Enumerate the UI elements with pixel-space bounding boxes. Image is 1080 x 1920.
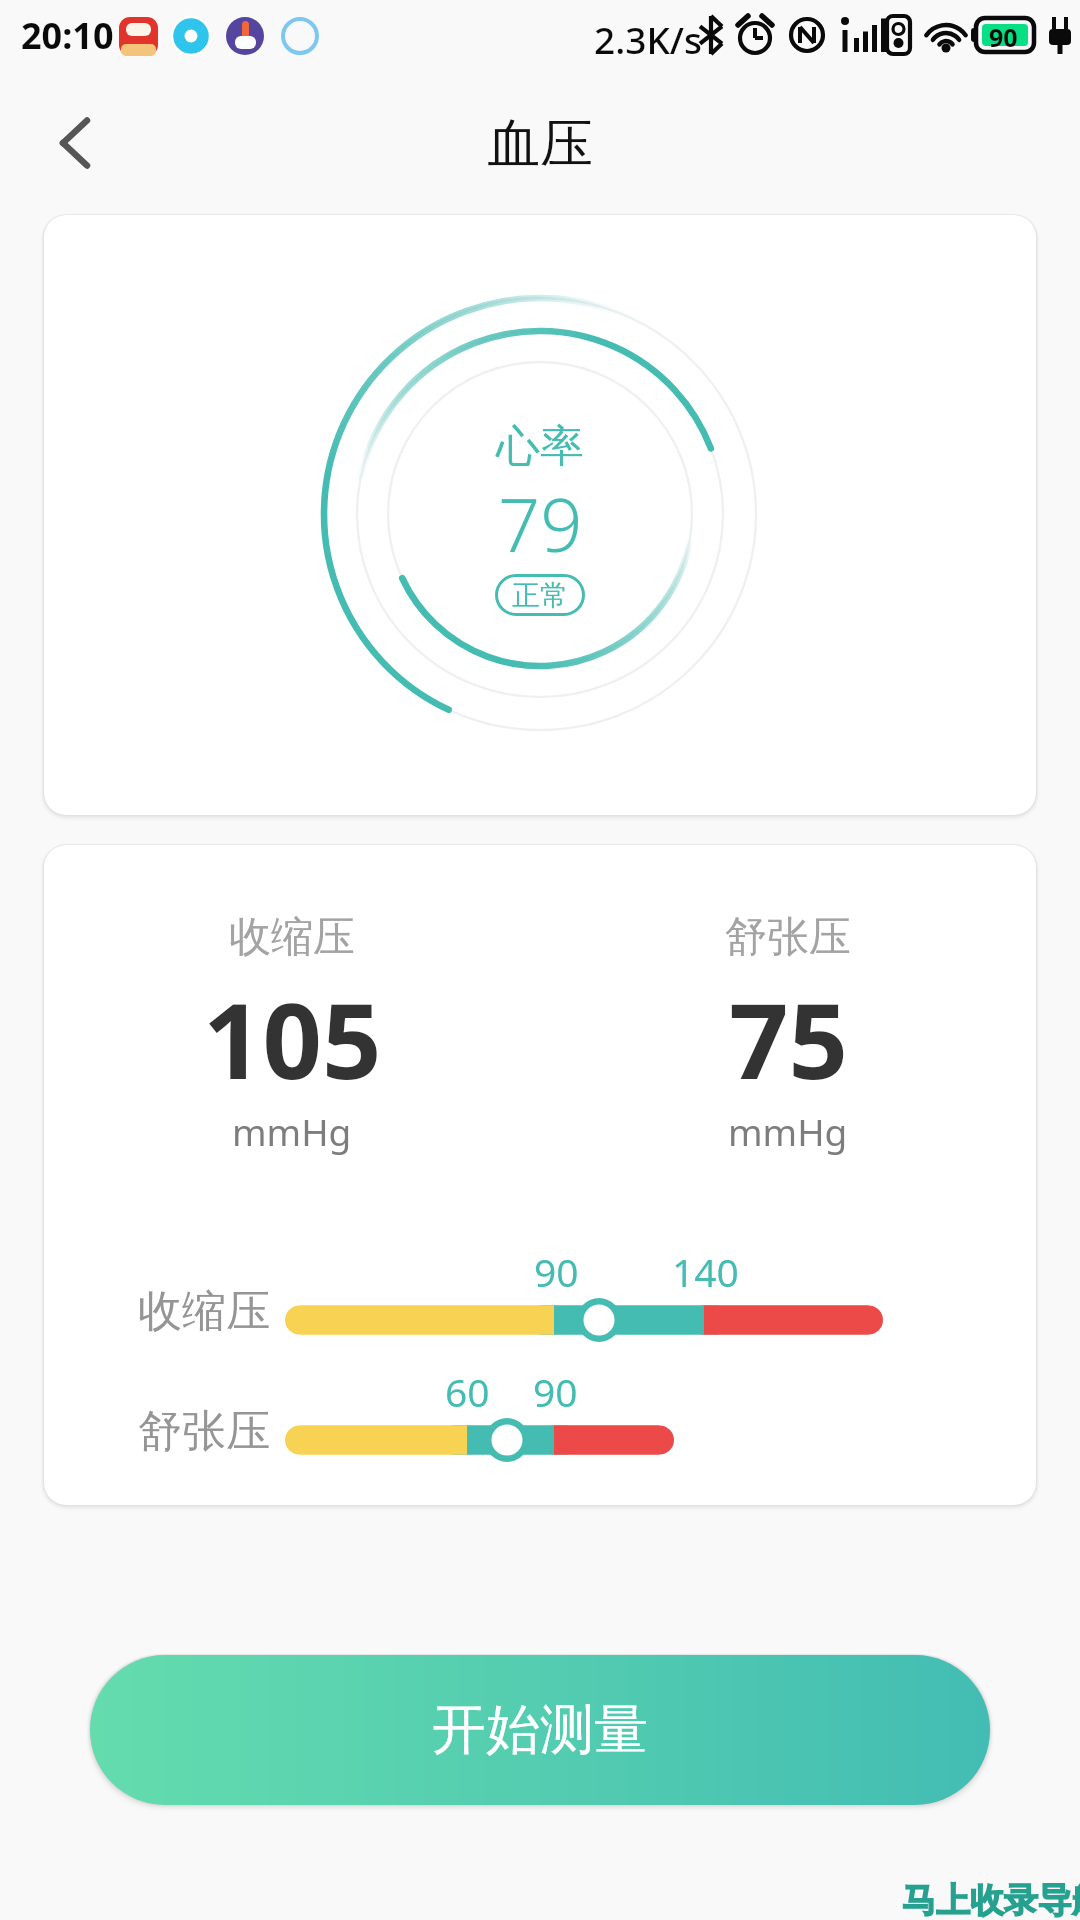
staticText: 2.3K/s <box>594 14 703 64</box>
staticText: 正常 <box>512 578 568 613</box>
staticText: mmHg <box>232 1106 352 1156</box>
staticText: 开始测量 <box>432 1696 648 1764</box>
button[interactable]: 收缩压 <box>134 1280 897 1360</box>
staticText: 90 <box>533 1365 578 1418</box>
staticText: 105 <box>203 968 382 1110</box>
staticText: mmHg <box>728 1106 848 1156</box>
staticText: 舒张压 <box>725 911 851 964</box>
staticText: 79 <box>498 473 583 574</box>
staticText: 收缩压 <box>138 1284 270 1339</box>
staticText: 90 <box>989 20 1018 54</box>
staticText: 75 <box>729 968 848 1110</box>
staticText: 心率 <box>496 419 584 474</box>
staticText: 收缩压 <box>229 911 355 964</box>
staticText: 90 <box>534 1245 579 1298</box>
button[interactable]: 开始测量 <box>90 1655 990 1805</box>
button[interactable]: 舒张压 <box>134 1400 688 1480</box>
staticText: 140 <box>672 1245 739 1298</box>
staticText: 血压 <box>487 111 593 178</box>
staticText: 马上收录导航 <box>902 1879 1080 1920</box>
button[interactable]: Back <box>23 91 127 195</box>
staticText: 舒张压 <box>138 1404 270 1459</box>
staticText: 20:10 <box>21 11 114 60</box>
staticText: 60 <box>445 1365 490 1418</box>
